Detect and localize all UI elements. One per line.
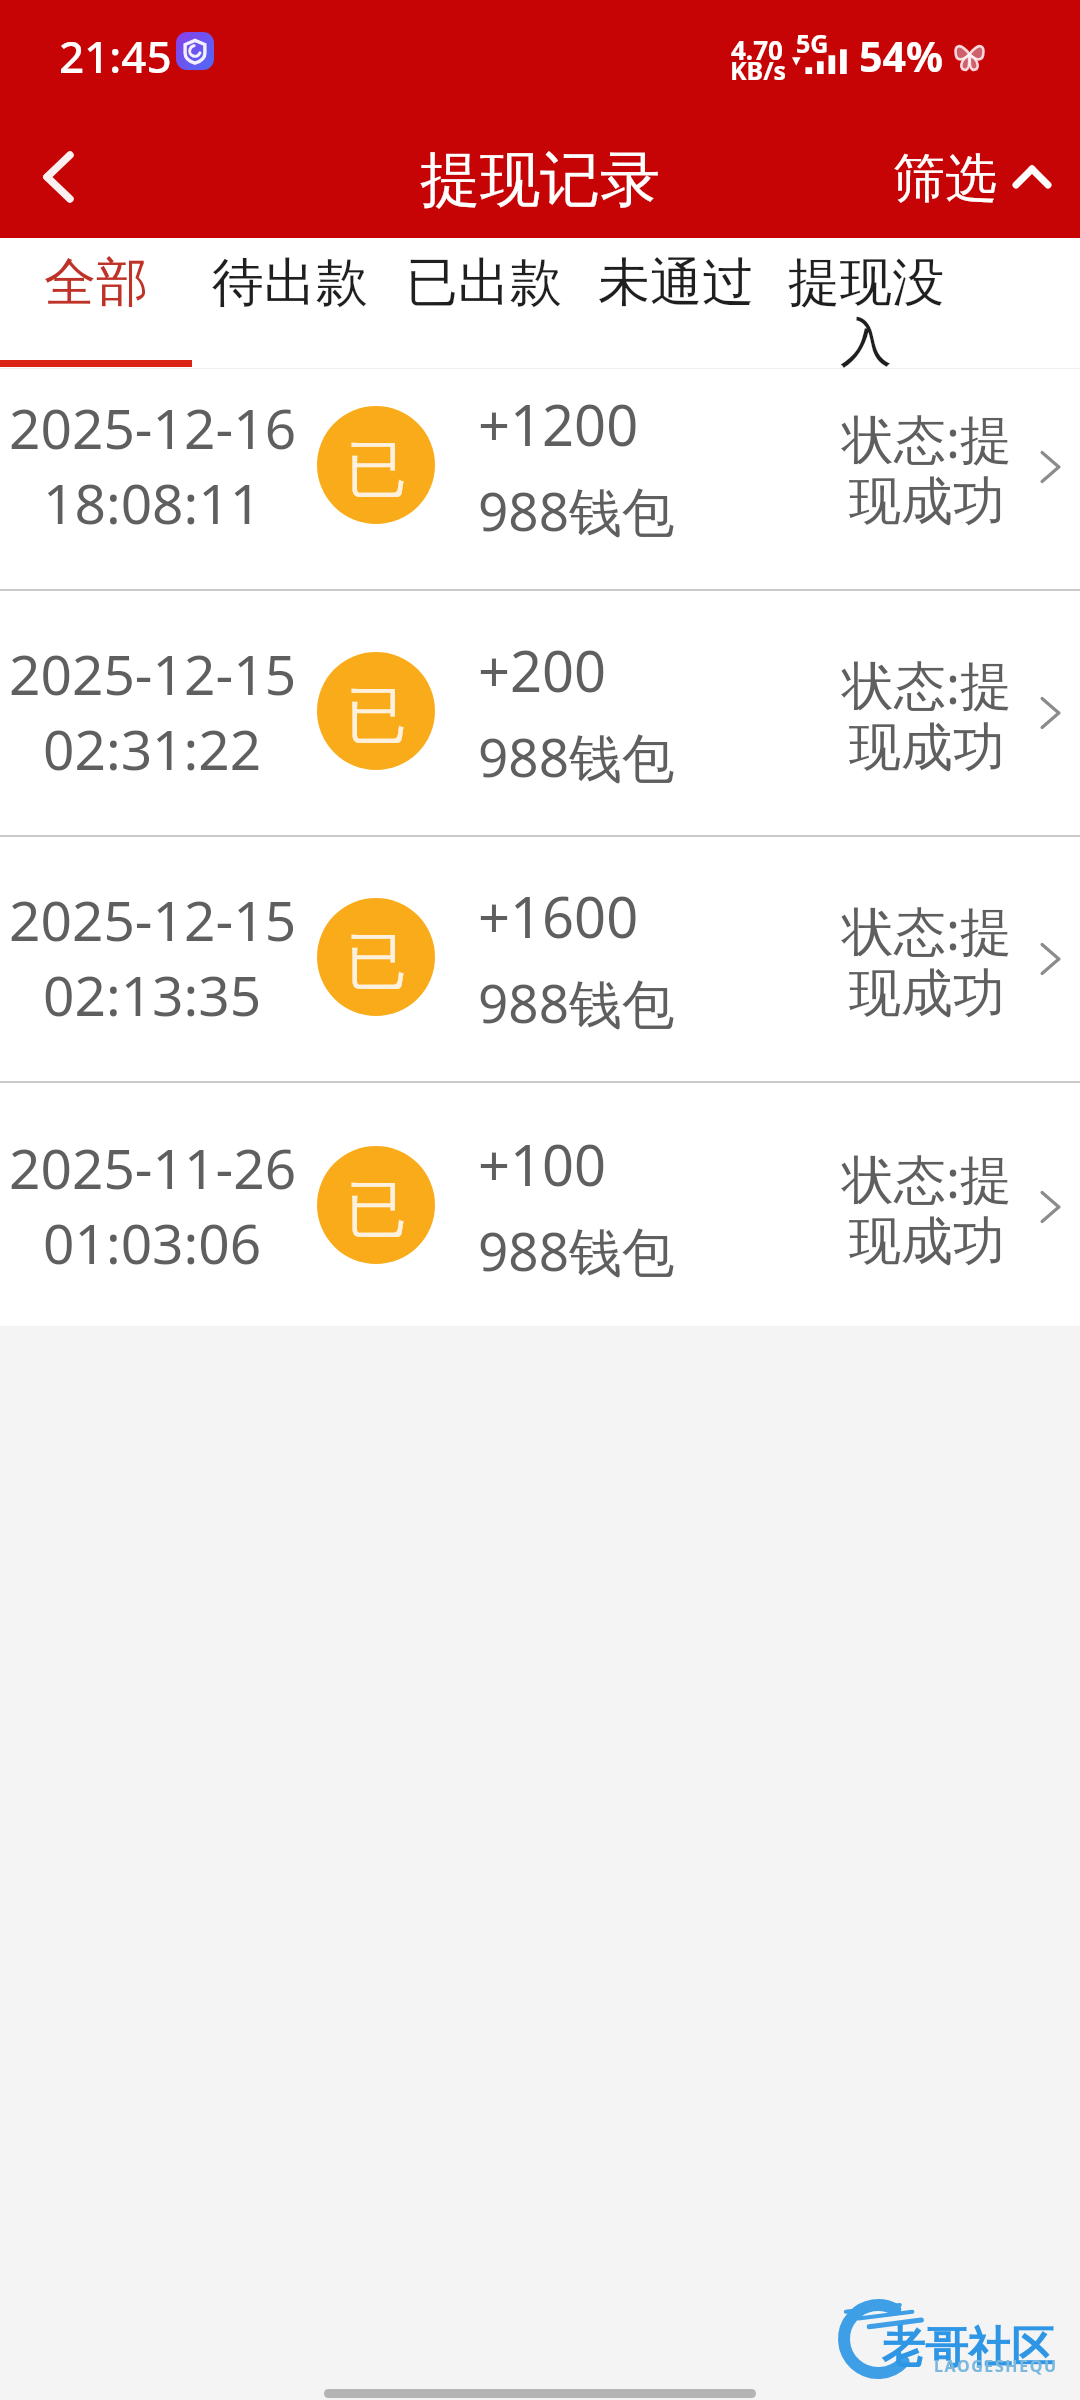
staticText: 状态:提现成功	[836, 648, 1018, 781]
staticText: 已出款	[406, 250, 562, 316]
staticText: 02:31:22	[43, 711, 262, 786]
button[interactable]: 全部	[0, 238, 192, 368]
staticText: 已	[346, 1171, 407, 1248]
staticText: 已	[346, 923, 407, 1000]
staticText: 2025-12-16	[9, 390, 297, 465]
staticText: 2025-12-15	[9, 636, 297, 711]
staticText: 988钱包	[478, 1214, 675, 1286]
staticText: 5G	[796, 26, 829, 60]
button[interactable]: 2025-12-15	[0, 588, 1080, 834]
staticText: 01:03:06	[43, 1205, 262, 1280]
staticText: 2025-11-26	[9, 1130, 297, 1205]
staticText: +200	[478, 632, 607, 708]
staticText: +1200	[478, 386, 639, 462]
staticText: 988钱包	[478, 474, 675, 546]
button[interactable]: 待出款	[192, 238, 388, 368]
button[interactable]: 2025-12-15	[0, 834, 1080, 1080]
staticText: 4.70	[731, 32, 783, 67]
staticText: 2025-12-15	[9, 882, 297, 957]
staticText: 待出款	[212, 250, 368, 316]
staticText: +1600	[478, 878, 639, 954]
staticText: 18:08:11	[43, 465, 262, 540]
button[interactable]: 2025-11-26	[0, 1082, 1080, 1328]
staticText: 状态:提现成功	[836, 402, 1018, 535]
staticText: 状态:提现成功	[836, 1142, 1018, 1275]
staticText: 提现记录	[420, 142, 660, 218]
staticText: KB/s	[730, 53, 787, 87]
staticText: 54%	[859, 28, 943, 84]
staticText: 老哥社区	[882, 2321, 1054, 2375]
staticText: 988钱包	[478, 720, 675, 792]
button[interactable]: 提现没入	[772, 238, 960, 368]
staticText: 21:45	[59, 26, 172, 86]
staticText: 提现没入	[772, 250, 960, 375]
button[interactable]: 2025-12-16	[0, 342, 1080, 588]
staticText: 已	[346, 431, 407, 508]
button[interactable]: 未通过	[580, 238, 772, 368]
staticText: 筛选	[893, 146, 997, 212]
staticText: LAOGESHEQU	[934, 2355, 1058, 2377]
button[interactable]: 已出款	[388, 238, 580, 368]
staticText: 全部	[44, 250, 148, 316]
staticText: 状态:提现成功	[836, 894, 1018, 1027]
staticText: 已	[346, 677, 407, 754]
staticText: 未通过	[598, 250, 754, 316]
button[interactable]: Back	[0, 120, 116, 236]
staticText: 988钱包	[478, 966, 675, 1038]
staticText: +100	[478, 1126, 607, 1202]
button[interactable]: 筛选	[870, 118, 1080, 238]
staticText: 02:13:35	[43, 957, 262, 1032]
